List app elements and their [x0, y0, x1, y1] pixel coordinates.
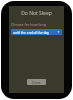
staticText: Done — [32, 80, 41, 85]
staticText: Choose for how long — [11, 22, 64, 27]
staticText: Do Not Sleep — [9, 10, 64, 17]
button[interactable]: Done — [27, 79, 46, 85]
button[interactable]: until the end of the day — [11, 29, 62, 35]
other: Open duration options — [57, 29, 60, 35]
staticText: until the end of the day — [13, 30, 57, 34]
